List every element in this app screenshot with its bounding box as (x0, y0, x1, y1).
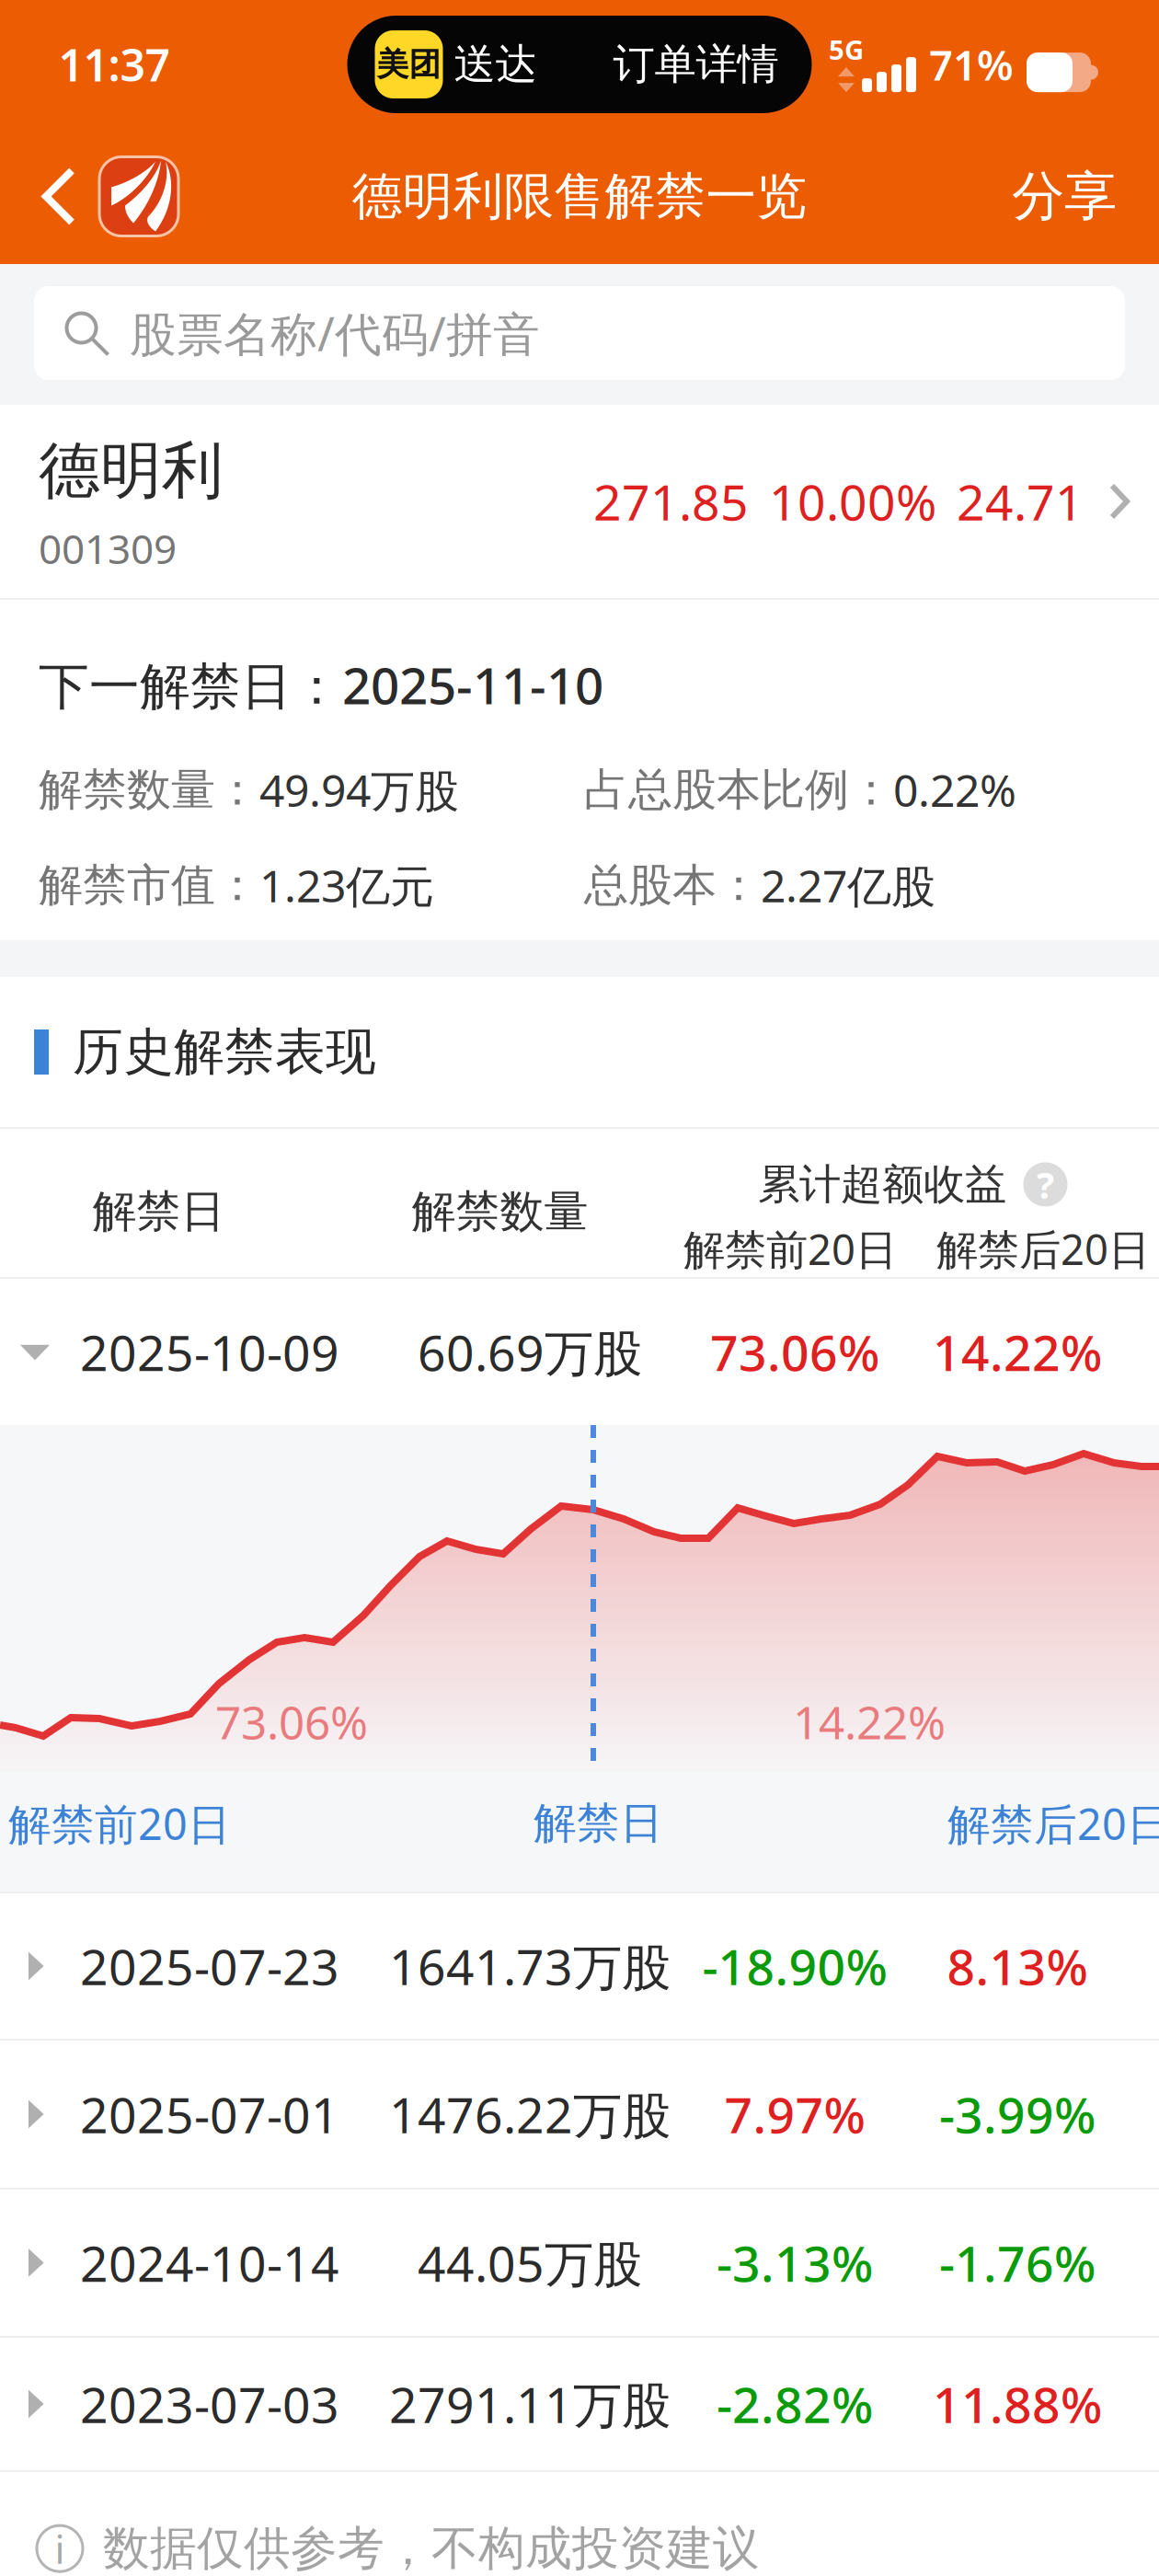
staticText: 001309 (39, 521, 177, 575)
staticText: 历史解禁表现 (73, 1021, 376, 1083)
button[interactable]: 股票名称/代码/拼音 (34, 286, 1125, 380)
staticText: 60.69万股 (418, 1319, 642, 1385)
staticText: 2025-10-09 (80, 1319, 339, 1385)
button[interactable]: Help (1023, 1162, 1067, 1206)
staticText: 44.05万股 (418, 2230, 642, 2295)
staticText: 24.71 (957, 469, 1084, 534)
staticText: 数据仅供参考，不构成投资建议 (103, 2520, 760, 2576)
staticText: 271.85 (593, 469, 749, 534)
staticText: 德明利 (39, 433, 224, 508)
staticText: -3.13% (717, 2230, 873, 2295)
staticText: 1641.73万股 (389, 1933, 671, 1999)
staticText: 2024-10-14 (80, 2230, 339, 2295)
staticText: -1.76% (939, 2230, 1096, 2295)
staticText: 11:37 (58, 35, 170, 94)
staticText: 49.94万股 (259, 760, 459, 819)
staticText: -3.99% (939, 2082, 1096, 2147)
button[interactable]: 2025-07-23 (0, 1893, 1159, 2039)
staticText: 2.27亿股 (761, 856, 935, 914)
staticText: 5G (829, 31, 864, 67)
staticText: 解禁前20日 (8, 1795, 231, 1852)
staticText: 订单详情 (613, 39, 779, 90)
staticText: 14.22% (793, 1691, 946, 1752)
staticText: 73.06% (215, 1691, 368, 1752)
staticText: 美团 (377, 45, 441, 84)
staticText: 1.23亿元 (259, 856, 434, 914)
staticText: 0.22% (893, 760, 1016, 819)
button[interactable]: 2024-10-14 (0, 2190, 1159, 2336)
button[interactable]: 德明利 (0, 405, 1159, 598)
staticText: 解禁后20日 (947, 1795, 1159, 1852)
button[interactable]: 分享 (990, 146, 1159, 247)
staticText: 解禁日 (534, 1797, 663, 1850)
staticText: 总股本： (584, 858, 761, 912)
staticText: i (55, 2522, 65, 2575)
staticText: 解禁数量 (412, 1185, 588, 1239)
staticText: 德明利限售解禁一览 (352, 166, 807, 227)
staticText: 2023-07-03 (80, 2371, 339, 2437)
staticText: 1476.22万股 (389, 2082, 671, 2147)
staticText: 解禁市值： (39, 858, 259, 912)
staticText: 8.13% (947, 1933, 1088, 1999)
staticText: 10.00% (769, 469, 936, 534)
staticText: 解禁后20日 (936, 1221, 1150, 1276)
staticText: 分享 (1012, 164, 1117, 229)
staticText: 股票名称/代码/拼音 (130, 302, 540, 364)
staticText: 14.22% (933, 1319, 1102, 1385)
button[interactable]: 2025-10-09 (0, 1279, 1159, 1425)
staticText: 解禁前20日 (683, 1221, 897, 1276)
staticText: 累计超额收益 (758, 1159, 1006, 1210)
button[interactable]: 2025-07-01 (0, 2041, 1159, 2188)
staticText: -18.90% (702, 1933, 887, 1999)
staticText: 解禁日 (92, 1185, 225, 1239)
staticText: 11.88% (933, 2371, 1102, 2437)
staticText: ? (1037, 1160, 1054, 1209)
button[interactable]: 2023-07-03 (0, 2338, 1159, 2470)
button[interactable]: Back (0, 146, 189, 247)
staticText: 2791.11万股 (389, 2371, 671, 2437)
staticText: 7.97% (724, 2082, 865, 2147)
staticText: 占总股本比例： (584, 763, 893, 817)
staticText: 2025-07-23 (80, 1933, 339, 1999)
staticText: -2.82% (717, 2371, 873, 2437)
staticText: 送达 (454, 39, 537, 90)
staticText: 73.06% (710, 1319, 879, 1385)
staticText: 71% (929, 37, 1014, 92)
staticText: 解禁数量： (39, 763, 259, 817)
staticText: 2025-07-01 (80, 2082, 339, 2147)
staticText: 下一解禁日：2025-11-10 (39, 651, 603, 718)
